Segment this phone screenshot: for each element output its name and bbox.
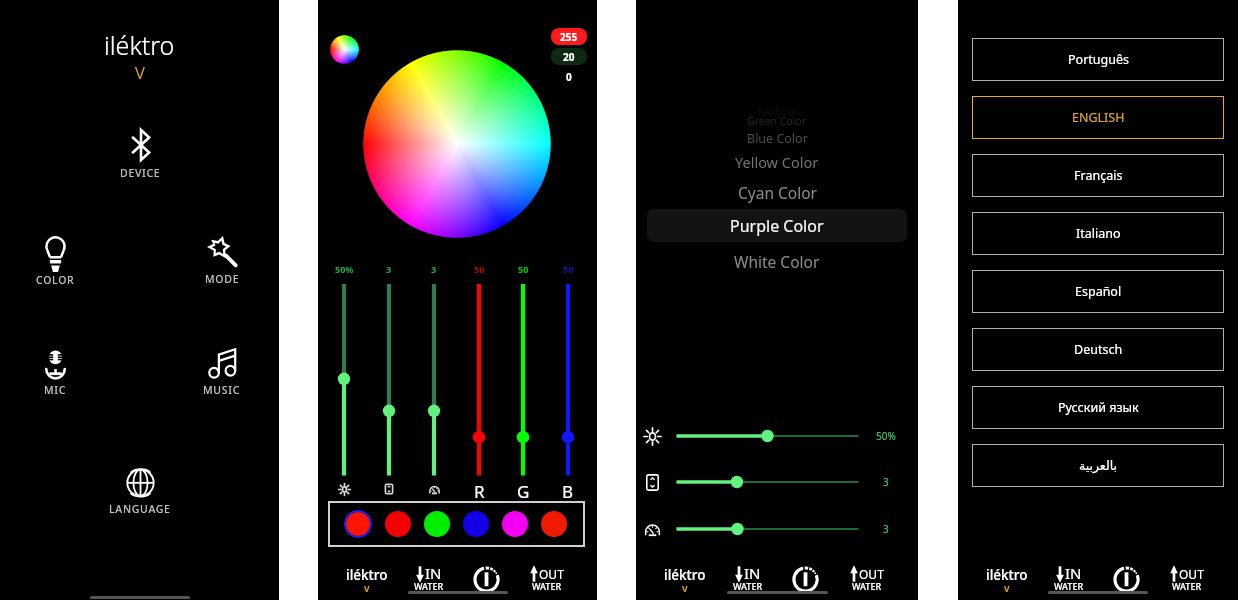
button[interactable]: Preset colour [385, 511, 411, 537]
staticText: v [1004, 581, 1010, 595]
button[interactable]: Slider 50 [459, 262, 499, 500]
staticText: WATER [414, 580, 444, 592]
button[interactable]: Português [972, 38, 1224, 81]
button[interactable]: Deutsch [972, 328, 1224, 371]
staticText: COLOR [36, 273, 75, 287]
button[interactable]: Preset colour [541, 511, 567, 537]
staticText: MODE [205, 272, 240, 286]
staticText: 50 [563, 263, 574, 275]
button[interactable]: Power [466, 562, 506, 596]
button[interactable]: MUSIC [195, 344, 249, 399]
button[interactable]: Out water [827, 563, 907, 600]
button[interactable]: Русский язык [972, 386, 1224, 429]
button[interactable]: LANGUAGE [101, 463, 179, 518]
staticText: IN [425, 563, 442, 583]
staticText: White Color [734, 251, 820, 272]
staticText: WATER [733, 580, 763, 592]
staticText: 50 [518, 263, 529, 275]
staticText: v [364, 581, 370, 595]
staticText: Red Color [758, 106, 797, 118]
staticText: 3 [431, 263, 437, 275]
staticText: Русский язык [1058, 399, 1139, 416]
button[interactable]: Blue Color [647, 122, 907, 154]
staticText: IN [744, 563, 761, 583]
staticText: LANGUAGE [109, 502, 171, 516]
button[interactable]: Français [972, 154, 1224, 197]
button[interactable]: White Color [647, 245, 907, 277]
button[interactable]: In water [708, 563, 788, 600]
staticText: Green Color [747, 114, 807, 128]
button[interactable]: Slider 50% [642, 419, 912, 453]
button[interactable]: Purple Color [647, 210, 907, 242]
button[interactable]: COLOR [28, 234, 83, 289]
button[interactable]: In water [1029, 563, 1109, 600]
button[interactable]: Español [972, 270, 1224, 313]
button[interactable]: MIC [31, 344, 80, 399]
staticText: WATER [532, 580, 562, 592]
button[interactable]: Power [785, 562, 825, 596]
staticText: R [474, 480, 485, 498]
staticText: iléktro [664, 566, 706, 584]
button[interactable]: Yellow Color [647, 146, 907, 178]
button[interactable]: Slider 50 [548, 262, 588, 500]
staticText: 50 [474, 263, 485, 275]
staticText: 3 [883, 522, 889, 536]
staticText: 255 [560, 30, 578, 44]
staticText: 3 [883, 475, 889, 489]
button[interactable]: DEVICE [112, 126, 169, 182]
button[interactable]: ENGLISH [972, 96, 1224, 139]
staticText: WATER [1172, 580, 1202, 592]
button[interactable]: Slider 3 [414, 262, 454, 500]
button[interactable]: Preset colour [346, 512, 370, 536]
button[interactable]: Pick color [363, 50, 551, 238]
button[interactable]: Italiano [972, 212, 1224, 255]
button[interactable]: Color wheel [330, 35, 359, 64]
staticText: Cyan Color [738, 182, 817, 203]
staticText: iléktro [346, 566, 388, 584]
staticText: DEVICE [120, 166, 161, 180]
staticText: OUT [539, 566, 564, 582]
button[interactable]: Power [1106, 562, 1146, 596]
staticText: ENGLISH [1072, 109, 1125, 126]
staticText: MUSIC [203, 383, 241, 397]
staticText: iléktro [986, 566, 1028, 584]
button[interactable]: In water [389, 563, 469, 600]
staticText: WATER [1054, 580, 1084, 592]
button[interactable]: Preset colour [424, 511, 450, 537]
staticText: MIC [44, 383, 67, 397]
button[interactable]: Preset colour [502, 511, 528, 537]
staticText: Español [1075, 283, 1122, 300]
staticText: Blue Color [747, 130, 808, 147]
button[interactable]: Slider 3 [642, 512, 912, 546]
staticText: G [517, 480, 530, 498]
button[interactable]: Out water [507, 563, 587, 600]
staticText: 50% [876, 429, 896, 443]
staticText: Português [1068, 51, 1129, 68]
staticText: OUT [1179, 566, 1204, 582]
staticText: v [135, 57, 145, 86]
staticText: Italiano [1076, 225, 1121, 242]
staticText: iléktro [104, 28, 175, 62]
button[interactable]: Slider 3 [369, 262, 409, 500]
staticText: 50% [335, 263, 354, 275]
button[interactable]: iléktro [645, 566, 725, 598]
staticText: 3 [386, 263, 392, 275]
button[interactable]: بالعربية [972, 444, 1224, 487]
button[interactable]: Preset colour [463, 511, 489, 537]
staticText: v [682, 581, 688, 595]
button[interactable]: Red Color [647, 96, 907, 128]
staticText: WATER [852, 580, 882, 592]
button[interactable]: Slider 50% [324, 262, 364, 500]
staticText: Purple Color [730, 215, 824, 237]
staticText: OUT [859, 566, 884, 582]
staticText: بالعربية [1079, 458, 1117, 473]
staticText: B [562, 480, 574, 498]
button[interactable]: iléktro [967, 566, 1047, 598]
button[interactable]: Slider 3 [642, 465, 912, 499]
button[interactable]: Cyan Color [647, 176, 907, 208]
button[interactable]: iléktro [327, 566, 407, 598]
button[interactable]: Green Color [647, 105, 907, 137]
button[interactable]: Out water [1147, 563, 1227, 600]
button[interactable]: Slider 50 [503, 262, 543, 500]
button[interactable]: MODE [197, 233, 248, 288]
